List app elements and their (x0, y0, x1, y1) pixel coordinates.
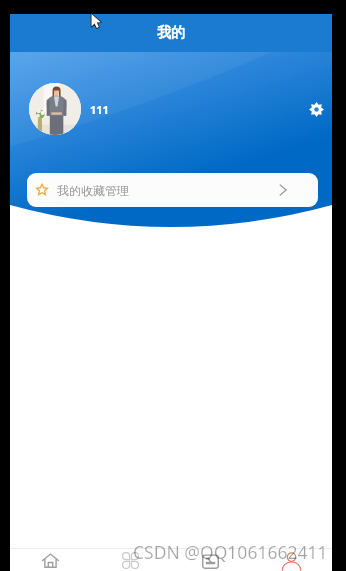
button[interactable]: Avatar (29, 83, 81, 135)
staticText: 我的收藏管理 (57, 183, 129, 198)
button[interactable]: Profile (251, 549, 332, 571)
button[interactable]: Settings (303, 96, 329, 122)
button[interactable]: 我的收藏管理 (27, 173, 318, 207)
staticText: CSDN @QQ1061662411 (133, 540, 328, 564)
staticText: 111 (90, 102, 109, 117)
button[interactable]: Categories (90, 549, 170, 571)
button[interactable]: Home (10, 549, 90, 571)
staticText: 我的 (157, 24, 185, 42)
button[interactable]: News (170, 549, 251, 571)
